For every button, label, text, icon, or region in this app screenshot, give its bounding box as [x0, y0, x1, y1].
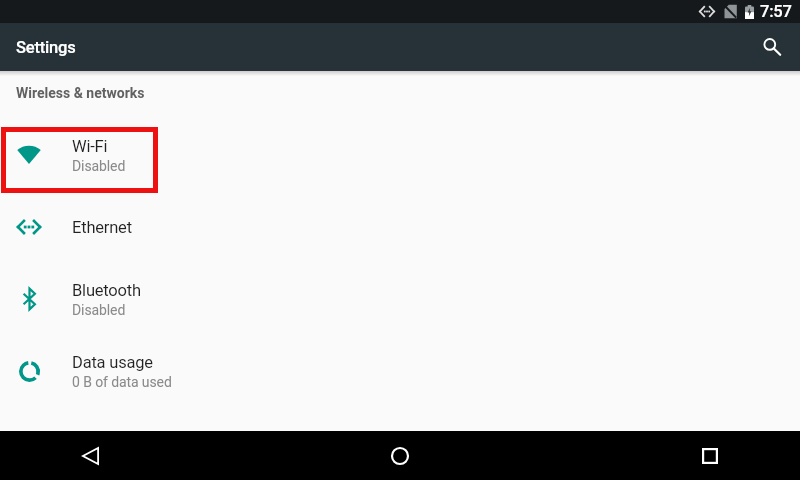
staticText: Ethernet: [72, 218, 132, 237]
staticText: 7:57: [760, 2, 792, 21]
button[interactable]: [376, 432, 424, 480]
button[interactable]: Bluetooth: [0, 263, 800, 335]
staticText: Disabled: [72, 158, 126, 174]
staticText: Settings: [16, 38, 76, 57]
button[interactable]: Wi-Fi: [0, 119, 800, 191]
button[interactable]: Ethernet: [0, 191, 800, 263]
staticText: Disabled: [72, 302, 126, 318]
staticText: Bluetooth: [72, 281, 141, 300]
staticText: Wireless & networks: [16, 85, 145, 101]
staticText: Wi-Fi: [72, 137, 108, 156]
button[interactable]: [756, 31, 788, 63]
button[interactable]: Data usage: [0, 335, 800, 407]
button[interactable]: [66, 432, 114, 480]
staticText: Data usage: [72, 353, 153, 372]
staticText: 0 B of data used: [72, 374, 172, 390]
button[interactable]: [686, 432, 734, 480]
